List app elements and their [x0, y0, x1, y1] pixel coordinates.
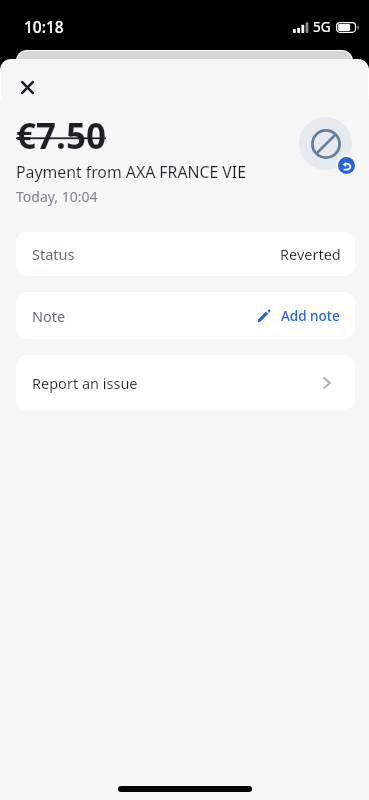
staticText: Payment from AXA FRANCE VIE: [16, 161, 246, 183]
staticText: Note: [32, 306, 66, 326]
staticText: €7.50: [16, 112, 106, 160]
staticText: Reverted: [280, 244, 341, 264]
staticText: 5G: [313, 18, 331, 36]
staticText: Today, 10:04: [16, 187, 98, 206]
staticText: 10:18: [24, 16, 64, 37]
staticText: Add note: [281, 307, 340, 325]
staticText: Report an issue: [32, 373, 138, 393]
button[interactable]: Report an issue: [16, 355, 355, 410]
staticText: Status: [32, 244, 75, 264]
button[interactable]: Close: [11, 71, 44, 104]
button[interactable]: Note: [16, 292, 355, 339]
button[interactable]: Add note: [257, 303, 340, 329]
button[interactable]: Status: [16, 232, 355, 276]
